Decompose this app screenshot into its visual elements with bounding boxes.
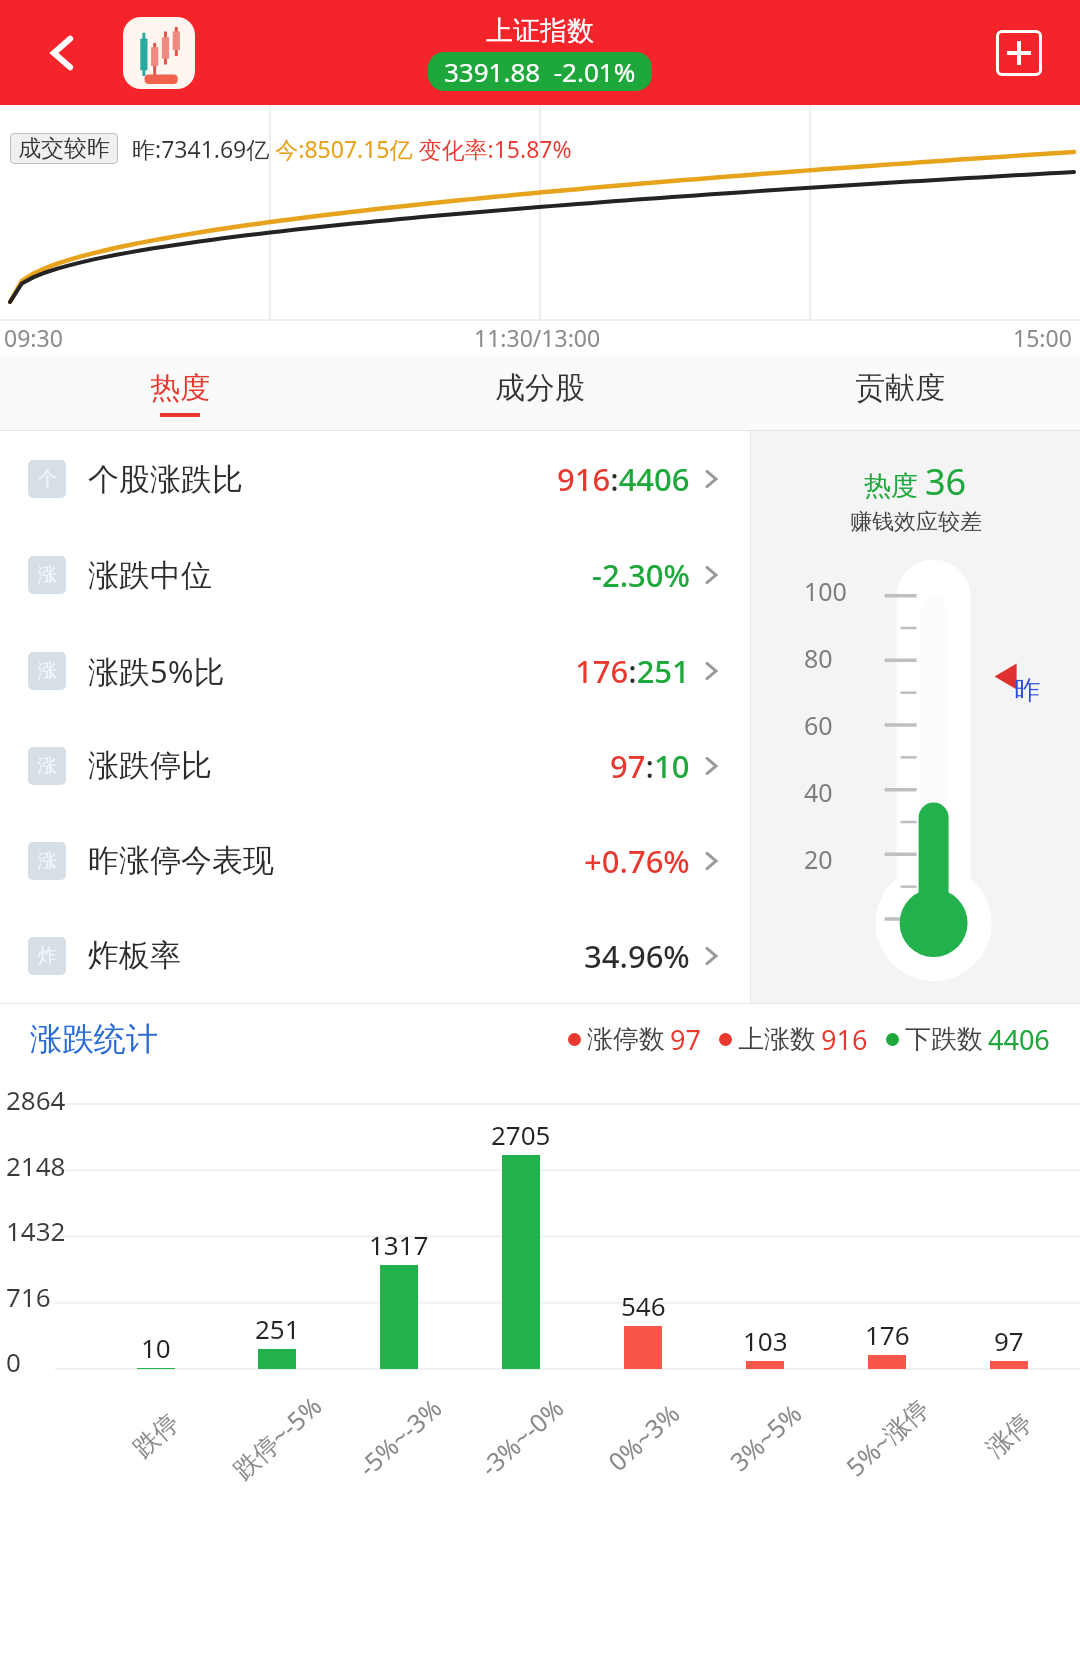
staticText: -2.30% [592, 554, 690, 596]
staticText: 97 [670, 1021, 701, 1058]
staticText: -3%~-0% [473, 1391, 570, 1483]
staticText: 昨 [1014, 674, 1040, 707]
staticText: 炸 [38, 944, 57, 968]
button[interactable]: 成分股 [360, 355, 720, 430]
button[interactable]: 涨 [0, 527, 750, 623]
staticText: 涨停数 [587, 1023, 665, 1056]
staticText: 34.96% [584, 935, 690, 977]
staticText: 176:251 [575, 650, 690, 692]
staticText: 涨停 [980, 1407, 1038, 1464]
staticText: 60 [804, 708, 833, 742]
staticText: +0.76% [584, 840, 690, 882]
button[interactable]: 成交较昨 [18, 134, 110, 163]
staticText: 个股涨跌比 [88, 460, 243, 499]
button[interactable]: 涨 [0, 718, 750, 813]
staticText: 热度 36 [864, 457, 967, 506]
staticText: 成分股 [495, 369, 585, 407]
button[interactable]: 涨 [0, 813, 750, 908]
staticText: 涨 [38, 754, 57, 778]
staticText: 4406 [988, 1021, 1050, 1058]
staticText: 赚钱效应较差 [850, 508, 982, 536]
staticText: 103 [743, 1323, 788, 1358]
staticText: 贡献度 [855, 369, 945, 407]
staticText: 2705 [491, 1117, 551, 1152]
staticText: 热度 [150, 369, 210, 407]
staticText: 2864 [6, 1082, 66, 1117]
staticText: 涨跌5%比 [88, 650, 225, 692]
staticText: 涨 [38, 563, 57, 587]
staticText: 个 [38, 467, 57, 491]
staticText: 成交较昨 [18, 134, 110, 163]
staticText: 97 [994, 1323, 1024, 1358]
staticText: 11:30/13:00 [474, 322, 601, 353]
staticText: 昨涨停今表现 [88, 841, 274, 880]
staticText: 0 [6, 1344, 21, 1379]
staticText: 涨跌停比 [88, 746, 212, 785]
staticText: 916:4406 [557, 458, 690, 500]
button[interactable]: Back [30, 21, 94, 85]
staticText: 916 [821, 1021, 868, 1058]
staticText: 100 [804, 574, 847, 608]
staticText: 涨跌中位 [88, 556, 212, 595]
staticText: 上涨数 [738, 1023, 816, 1056]
button[interactable]: 热度 [0, 355, 360, 430]
staticText: 1317 [369, 1227, 429, 1262]
staticText: 2148 [6, 1148, 66, 1183]
staticText: -5%~-3% [351, 1391, 448, 1483]
button[interactable]: 涨 [0, 623, 750, 718]
staticText: 15:00 [1013, 322, 1072, 353]
button[interactable]: Add [996, 30, 1042, 76]
staticText: 80 [804, 641, 833, 675]
button[interactable]: 个 [0, 431, 750, 527]
staticText: 涨 [38, 849, 57, 873]
staticText: 5%~涨停 [838, 1391, 936, 1483]
staticText: 3%~5% [722, 1396, 808, 1478]
staticText: 716 [6, 1279, 51, 1314]
staticText: 跌停 [127, 1407, 185, 1464]
button[interactable]: 贡献度 [720, 355, 1080, 430]
staticText: 上证指数 [486, 14, 594, 48]
staticText: 09:30 [4, 322, 63, 353]
staticText: 下跌数 [905, 1023, 983, 1056]
staticText: 1432 [6, 1213, 66, 1248]
staticText: 20 [804, 842, 833, 876]
staticText: 炸板率 [88, 936, 181, 975]
staticText: 0%~3% [600, 1396, 686, 1478]
staticText: 昨:7341.69亿 今:8507.15亿 变化率:15.87% [132, 133, 572, 164]
staticText: 3391.88 -2.01% [444, 54, 636, 89]
staticText: 跌停~-5% [225, 1388, 328, 1486]
staticText: 251 [255, 1311, 300, 1346]
button[interactable]: 炸 [0, 908, 750, 1003]
staticText: 546 [621, 1288, 666, 1323]
staticText: 176 [865, 1317, 910, 1352]
staticText: 涨跌统计 [30, 1019, 158, 1059]
button[interactable]: App icon [123, 17, 195, 89]
staticText: 10 [141, 1330, 171, 1365]
staticText: 涨 [38, 659, 57, 683]
staticText: 97:10 [610, 745, 690, 787]
staticText: 40 [804, 775, 833, 809]
